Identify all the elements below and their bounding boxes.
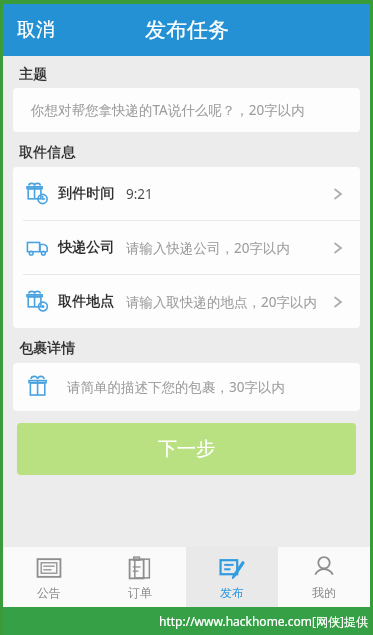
staticText: 发布任务	[145, 17, 229, 43]
staticText: http://www.hackhome.com[网侠]提供	[159, 613, 368, 629]
button[interactable]: 发布	[186, 547, 278, 607]
button[interactable]: 到件时间	[13, 167, 360, 220]
button[interactable]: 取消	[9, 12, 63, 48]
staticText: 订单	[128, 585, 152, 600]
staticText: 我的	[312, 585, 336, 600]
staticText: 你想对帮您拿快递的TA说什么呢？，20字以内	[31, 101, 305, 119]
staticText: 取件信息	[19, 144, 75, 162]
staticText: 公告	[37, 585, 61, 600]
staticText: 到件时间	[58, 185, 114, 203]
staticText: 9:21	[126, 185, 153, 203]
button[interactable]: 请简单的描述下您的包裹，30字以内	[13, 363, 360, 411]
staticText: 请简单的描述下您的包裹，30字以内	[67, 378, 285, 396]
button[interactable]: 我的	[278, 547, 370, 607]
staticText: 取件地点	[58, 293, 114, 311]
button[interactable]: 取件地点	[13, 275, 360, 328]
staticText: 下一步	[158, 437, 215, 461]
staticText: 快递公司	[58, 239, 114, 257]
staticText: 请输入取快递的地点，20字以内	[126, 293, 317, 311]
button[interactable]: 下一步	[17, 423, 356, 475]
staticText: 发布	[220, 585, 244, 600]
staticText: 包裹详情	[19, 340, 75, 358]
button[interactable]: 快递公司	[13, 221, 360, 274]
staticText: 请输入快递公司，20字以内	[126, 239, 290, 257]
staticText: 取消	[17, 18, 55, 42]
button[interactable]: 公告	[3, 547, 94, 607]
button[interactable]: 订单	[94, 547, 186, 607]
staticText: 主题	[19, 66, 47, 84]
button[interactable]: 你想对帮您拿快递的TA说什么呢？，20字以内	[13, 88, 360, 132]
